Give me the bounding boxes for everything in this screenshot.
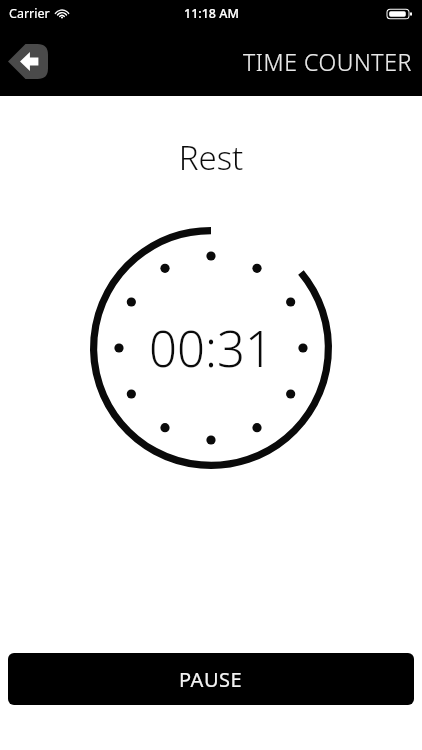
button[interactable]: Back xyxy=(8,44,48,79)
staticText: TIME COUNTER xyxy=(243,46,412,77)
staticText: 00:31 xyxy=(149,315,273,382)
staticText: PAUSE xyxy=(179,666,243,693)
button[interactable]: PAUSE xyxy=(8,653,414,705)
staticText: Carrier xyxy=(9,5,50,22)
staticText: Rest xyxy=(0,135,422,180)
staticText: 11:18 AM xyxy=(184,5,239,22)
